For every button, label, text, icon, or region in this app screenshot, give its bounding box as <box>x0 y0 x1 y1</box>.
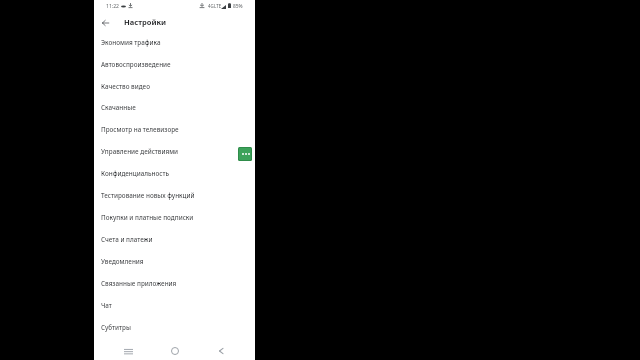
button[interactable]: Back <box>211 341 231 360</box>
staticText: Конфиденциальность <box>101 169 170 178</box>
button[interactable]: Управление действиями <box>94 140 255 162</box>
button[interactable]: Качество видео <box>94 75 255 97</box>
button[interactable]: Recent apps <box>118 341 138 360</box>
button[interactable]: Home <box>165 341 185 360</box>
button[interactable]: Связанные приложения <box>94 272 255 294</box>
button[interactable]: Субтитры <box>94 316 255 338</box>
staticText: Счета и платежи <box>101 235 153 244</box>
staticText: Качество видео <box>101 82 150 91</box>
staticText: Уведомления <box>101 257 144 266</box>
button[interactable]: Чат <box>94 294 255 316</box>
staticText: 11:22 <box>106 3 120 10</box>
staticText: Скачанные <box>101 103 136 112</box>
staticText: Экономия трафика <box>101 38 161 47</box>
staticText: Связанные приложения <box>101 279 177 288</box>
button[interactable]: Уведомления <box>94 250 255 272</box>
button[interactable]: Конфиденциальность <box>94 162 255 184</box>
button[interactable]: Просмотр на телевизоре <box>94 118 255 140</box>
staticText: 85% <box>233 3 243 10</box>
button[interactable]: Автовоспроизведение <box>94 53 255 75</box>
staticText: Тестирование новых функций <box>101 191 195 200</box>
button[interactable]: Тестирование новых функций <box>94 184 255 206</box>
button[interactable]: Скачанные <box>94 96 255 118</box>
button[interactable]: Back <box>95 13 115 33</box>
staticText: 4G <box>208 3 214 9</box>
button[interactable]: Счета и платежи <box>94 228 255 250</box>
staticText: Настройки <box>124 17 167 27</box>
staticText: Управление действиями <box>101 147 179 156</box>
button[interactable]: Экономия трафика <box>94 31 255 53</box>
button[interactable]: Покупки и платные подписки <box>94 206 255 228</box>
staticText: Просмотр на телевизоре <box>101 125 179 134</box>
button[interactable]: More options <box>238 147 252 161</box>
staticText: LTE <box>214 3 222 9</box>
staticText: Автовоспроизведение <box>101 60 171 69</box>
staticText: Чат <box>101 301 112 310</box>
staticText: Покупки и платные подписки <box>101 213 194 222</box>
staticText: Субтитры <box>101 323 131 332</box>
